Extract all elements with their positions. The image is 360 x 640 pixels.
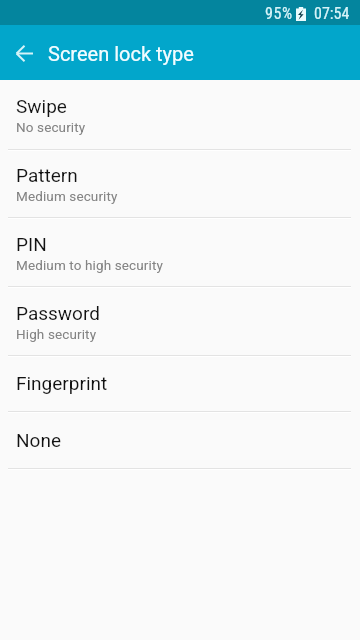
button[interactable]: Pattern bbox=[0, 151, 360, 217]
staticText: Pattern bbox=[16, 164, 78, 186]
staticText: PIN bbox=[16, 233, 47, 255]
staticText: Medium to high security bbox=[16, 257, 163, 273]
button[interactable]: PIN bbox=[0, 219, 360, 286]
staticText: Swipe bbox=[16, 95, 67, 117]
button[interactable]: Navigate up bbox=[6, 35, 42, 71]
button[interactable]: Password bbox=[0, 288, 360, 355]
staticText: High security bbox=[16, 326, 97, 342]
button[interactable]: Swipe bbox=[0, 80, 360, 149]
button[interactable]: None bbox=[0, 413, 360, 468]
button[interactable]: Fingerprint bbox=[0, 357, 360, 411]
staticText: None bbox=[16, 429, 61, 451]
staticText: Password bbox=[16, 302, 100, 324]
staticText: 95% bbox=[265, 4, 293, 23]
staticText: 07:54 bbox=[314, 4, 350, 23]
staticText: Fingerprint bbox=[16, 372, 108, 394]
staticText: Medium security bbox=[16, 188, 118, 204]
staticText: No security bbox=[16, 119, 86, 135]
staticText: Screen lock type bbox=[48, 42, 194, 65]
